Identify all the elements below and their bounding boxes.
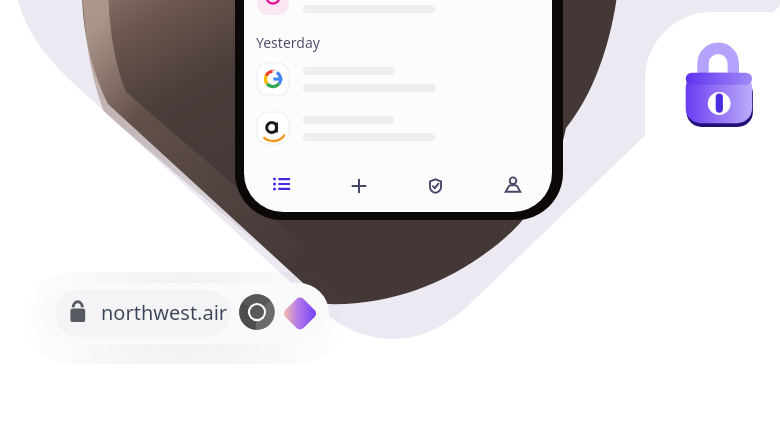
button[interactable]: Add item: [333, 160, 385, 212]
button[interactable]: Security check: [410, 160, 462, 212]
button[interactable]: Account: [487, 160, 539, 212]
button[interactable]: Vault list: [255, 160, 307, 212]
button[interactable]: northwest.air: [39, 283, 329, 344]
staticText: northwest.air: [101, 299, 228, 326]
staticText: Yesterday: [256, 33, 320, 52]
